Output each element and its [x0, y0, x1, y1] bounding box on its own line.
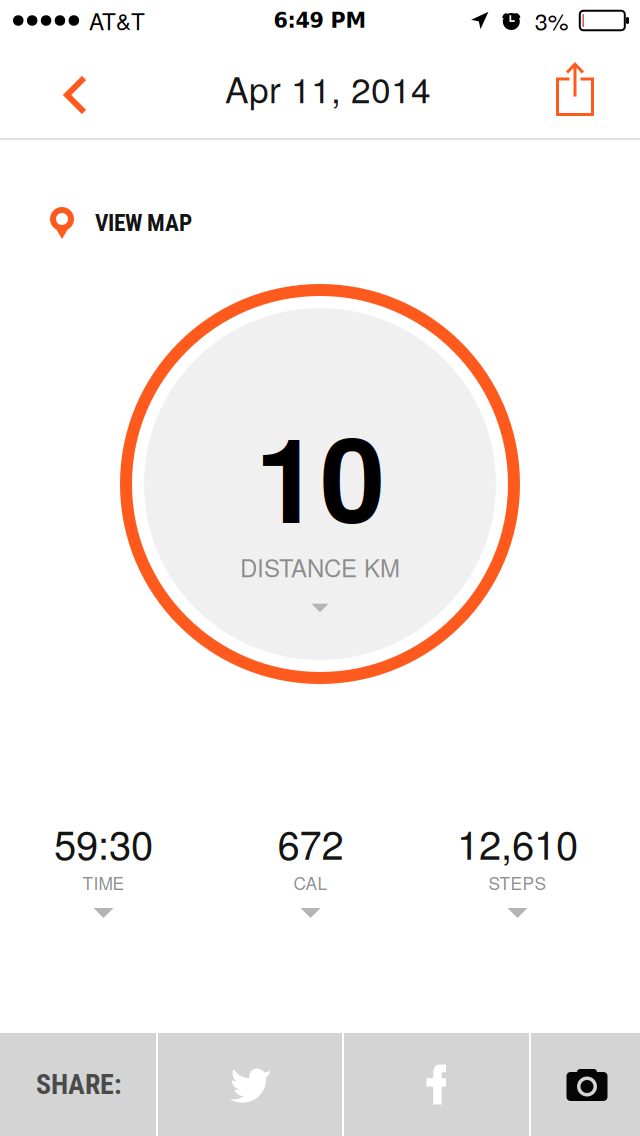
button[interactable]: Back: [0, 49, 117, 129]
staticText: STEPS: [488, 870, 546, 895]
staticText: SHARE:: [36, 1068, 122, 1101]
button[interactable]: VIEW MAP: [50, 200, 192, 246]
staticText: Apr 11, 2014: [225, 63, 431, 113]
staticText: AT&T: [89, 4, 145, 37]
staticText: DISTANCE KM: [240, 550, 400, 584]
staticText: 59:30: [54, 814, 153, 871]
staticText: CAL: [293, 870, 327, 895]
staticText: VIEW MAP: [95, 209, 192, 237]
staticText: 3%: [535, 4, 569, 37]
button[interactable]: Share: [532, 44, 640, 134]
staticText: 10: [255, 391, 385, 559]
button[interactable]: 12,610: [414, 810, 621, 922]
staticText: 6:49 PM: [273, 8, 366, 33]
button[interactable]: Camera: [531, 1033, 640, 1136]
staticText: 12,610: [457, 814, 578, 871]
button[interactable]: Share on Facebook: [344, 1033, 529, 1136]
button[interactable]: SHARE:: [0, 1033, 156, 1136]
staticText: TIME: [82, 870, 124, 895]
button[interactable]: Share on Twitter: [158, 1033, 342, 1136]
button[interactable]: 672: [207, 810, 414, 922]
button[interactable]: 59:30: [0, 810, 207, 922]
staticText: 672: [277, 814, 343, 871]
